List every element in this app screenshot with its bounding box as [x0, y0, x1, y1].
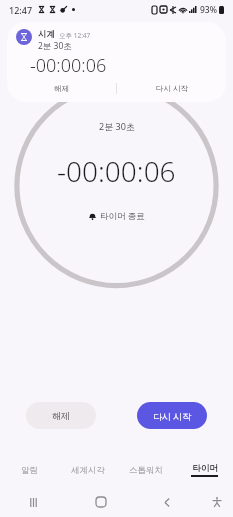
button[interactable]: 스톱워치 — [117, 459, 175, 481]
staticText: 스톱워치 — [129, 465, 163, 476]
staticText: 2분 30초 — [38, 40, 72, 52]
button[interactable]: Recent apps — [0, 487, 67, 517]
staticText: 다시 시작 — [153, 410, 192, 422]
button[interactable]: 타이머 — [175, 459, 233, 481]
staticText: 2분 30초 — [99, 120, 135, 132]
button[interactable]: 시계 — [7, 22, 226, 102]
staticText: 알림 — [21, 465, 38, 476]
button[interactable]: 다시 시작 — [117, 79, 226, 97]
button[interactable]: 해제 — [7, 79, 116, 97]
button[interactable]: Back — [134, 487, 201, 517]
button[interactable]: Home — [67, 487, 134, 517]
staticText: 타이머 — [192, 463, 218, 474]
button[interactable]: 알림 — [0, 459, 59, 481]
staticText: -00:00:06 — [57, 152, 176, 190]
button[interactable]: 세계시각 — [59, 459, 117, 481]
staticText: 다시 시작 — [156, 83, 188, 93]
button[interactable]: Accessibility — [201, 487, 233, 517]
staticText: 해제 — [52, 410, 70, 421]
staticText: 타이머 종료 — [100, 210, 145, 222]
staticText: 시계 — [38, 29, 55, 40]
button[interactable]: 다시 시작 — [137, 402, 207, 429]
staticText: 오후 12:47 — [59, 31, 91, 40]
staticText: 해제 — [54, 84, 69, 93]
staticText: 세계시각 — [71, 465, 105, 476]
button[interactable]: 해제 — [26, 402, 96, 429]
staticText: -00:00:06 — [30, 53, 107, 78]
staticText: 93% — [200, 4, 217, 16]
staticText: 12:47 — [9, 4, 33, 16]
